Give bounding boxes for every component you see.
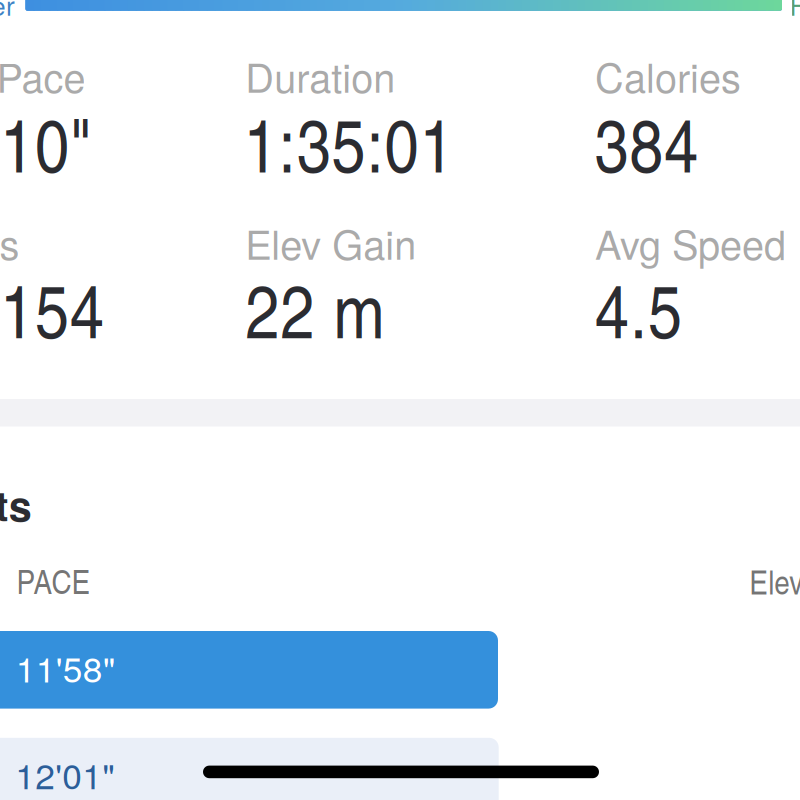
staticText: Calories [595, 47, 741, 104]
staticText: Elev Gain [749, 557, 800, 604]
staticText: Duration [245, 47, 395, 104]
staticText: 12'01" [15, 749, 115, 799]
staticText: 18,154 [0, 257, 104, 359]
staticText: 4.5 [595, 257, 682, 359]
staticText: 384 [594, 91, 698, 194]
staticText: Splits [0, 475, 32, 534]
staticText: Faster [789, 0, 800, 23]
staticText: 1:35:01 [244, 91, 454, 194]
staticText: 11'10" [0, 91, 92, 194]
staticText: PACE [16, 557, 90, 604]
staticText: 22 m [245, 257, 384, 359]
staticText: Avg Pace [0, 47, 85, 104]
staticText: Slower [0, 0, 15, 23]
staticText: 11'58" [16, 642, 116, 693]
staticText: Elev Gain [245, 214, 416, 271]
staticText: Steps [0, 214, 19, 271]
staticText: Avg Speed [595, 214, 786, 271]
